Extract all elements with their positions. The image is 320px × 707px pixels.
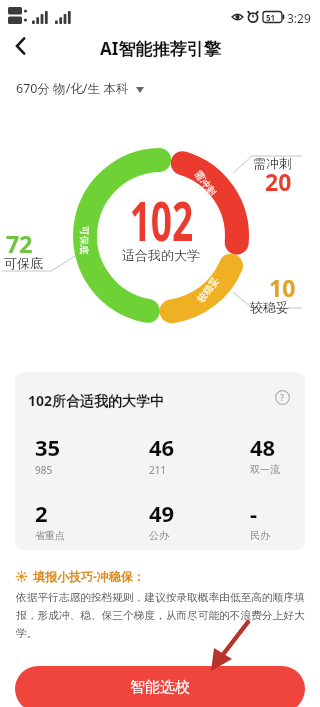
- staticText: 35: [35, 432, 61, 462]
- staticText: 省重点: [35, 529, 65, 542]
- staticText: 填报小技巧-冲稳保：: [33, 568, 145, 584]
- staticText: 102: [130, 184, 193, 256]
- staticText: 51: [266, 12, 276, 23]
- staticText: 适合我的大学: [122, 247, 200, 263]
- staticText: 需冲刺: [253, 155, 292, 171]
- staticText: 2: [35, 498, 48, 528]
- button[interactable]: 670分 物/化/生 本科: [16, 78, 144, 99]
- staticText: AI智能推荐引擎: [100, 37, 221, 60]
- staticText: 10: [269, 272, 296, 303]
- staticText: ?: [280, 391, 285, 403]
- staticText: 20: [265, 166, 292, 197]
- staticText: 985: [35, 463, 53, 477]
- staticText: 双一流: [250, 463, 280, 476]
- staticText: 较稳妥: [195, 274, 222, 305]
- staticText: 211: [149, 463, 167, 477]
- button[interactable]: Help: [271, 386, 293, 408]
- staticText: 公办: [149, 529, 169, 542]
- staticText: 民办: [250, 529, 270, 542]
- staticText: 46: [149, 432, 175, 462]
- staticText: 需冲刺: [192, 168, 219, 199]
- staticText: 3:29: [287, 10, 311, 26]
- staticText: 可保底: [78, 226, 90, 255]
- staticText: 670分 物/化/生 本科: [16, 80, 129, 97]
- staticText: 智能选校: [130, 678, 190, 697]
- staticText: 可保底: [4, 255, 43, 271]
- staticText: 102所合适我的大学中: [28, 391, 165, 410]
- staticText: -: [250, 498, 258, 528]
- button[interactable]: Back: [4, 32, 38, 60]
- staticText: 较稳妥: [250, 299, 289, 315]
- staticText: 49: [149, 498, 175, 528]
- staticText: 依据平行志愿的投档规则，建议按录取概率由低至高的顺序填报，形成冲、稳、保三个梯度…: [16, 591, 308, 641]
- button[interactable]: 智能选校: [15, 666, 305, 707]
- staticText: 48: [250, 432, 276, 462]
- staticText: 72: [6, 228, 33, 259]
